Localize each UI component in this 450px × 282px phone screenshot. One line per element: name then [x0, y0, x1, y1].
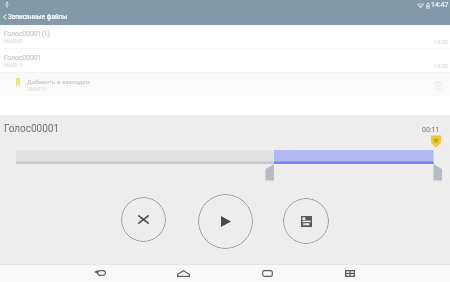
- staticText: Голос00001(1): [4, 30, 50, 38]
- button[interactable]: Play: [198, 194, 253, 249]
- staticText: 14:23: [434, 63, 448, 69]
- button[interactable]: Голос00001(1): [0, 25, 450, 48]
- staticText: 00:11: [422, 126, 440, 134]
- staticText: Записанные файлы: [8, 13, 68, 21]
- button[interactable]: Back: [89, 264, 111, 282]
- button[interactable]: Голос00001: [0, 49, 450, 72]
- staticText: 00:00:01: [4, 38, 24, 44]
- button[interactable]: Записанные файлы: [0, 11, 450, 23]
- button[interactable]: Delete: [430, 76, 446, 93]
- button[interactable]: Split screen: [339, 264, 361, 282]
- staticText: 00:00:11: [4, 62, 24, 68]
- staticText: 14:47: [431, 1, 449, 9]
- button[interactable]: Home: [172, 264, 194, 282]
- staticText: Голос00001: [4, 54, 42, 62]
- staticText: Голос00001: [4, 123, 60, 135]
- staticText: 00:00:11: [27, 86, 47, 92]
- staticText: 14:23: [434, 39, 448, 45]
- button[interactable]: Добавить в закладки: [0, 73, 450, 96]
- staticText: Добавить в закладки: [27, 78, 90, 85]
- button[interactable]: Cancel: [121, 197, 166, 242]
- button[interactable]: Save: [283, 198, 329, 244]
- button[interactable]: Recents: [256, 264, 278, 282]
